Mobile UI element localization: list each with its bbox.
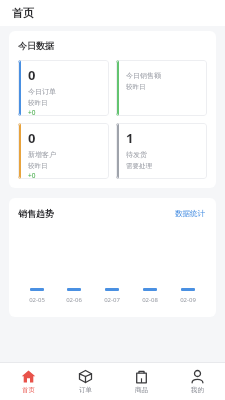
staticText: 我的 (191, 386, 204, 394)
staticText: 较昨日 (28, 162, 48, 170)
button[interactable]: 0 (18, 123, 109, 179)
staticText: 1 (126, 129, 134, 147)
staticText: 今日数据 (18, 40, 54, 51)
staticText: +0 (28, 171, 36, 179)
staticText: 02-05 (29, 296, 45, 304)
staticText: 首页 (22, 386, 35, 394)
button[interactable]: 订单 (57, 363, 113, 400)
button[interactable]: 0 (18, 60, 109, 116)
staticText: 商品 (135, 386, 148, 394)
staticText: 需要处理 (126, 162, 152, 170)
staticText: 02-08 (142, 296, 158, 304)
staticText: 待发货 (126, 150, 147, 159)
staticText: 02-09 (180, 296, 196, 304)
staticText: 订单 (79, 386, 92, 394)
staticText: 首页 (12, 6, 34, 20)
button[interactable]: 商品 (113, 363, 169, 400)
button[interactable]: 1 (116, 123, 207, 179)
button[interactable]: 数据统计 (173, 207, 207, 220)
staticText: 新增客户 (28, 150, 56, 159)
staticText: 02-06 (66, 296, 82, 304)
staticText: 销售趋势 (18, 208, 54, 219)
staticText: +0 (28, 108, 36, 116)
staticText: 02-07 (104, 296, 120, 304)
staticText: 0 (28, 66, 36, 84)
staticText: 今日销售额 (126, 71, 161, 80)
button[interactable]: 我的 (169, 363, 225, 400)
staticText: 0 (28, 129, 36, 147)
staticText: 今日订单 (28, 87, 56, 96)
staticText: 较昨日 (28, 99, 48, 107)
staticText: 数据统计 (175, 209, 205, 218)
staticText: 较昨日 (126, 83, 146, 91)
button[interactable]: 首页 (0, 363, 57, 400)
button[interactable]: 今日销售额 (116, 60, 207, 116)
